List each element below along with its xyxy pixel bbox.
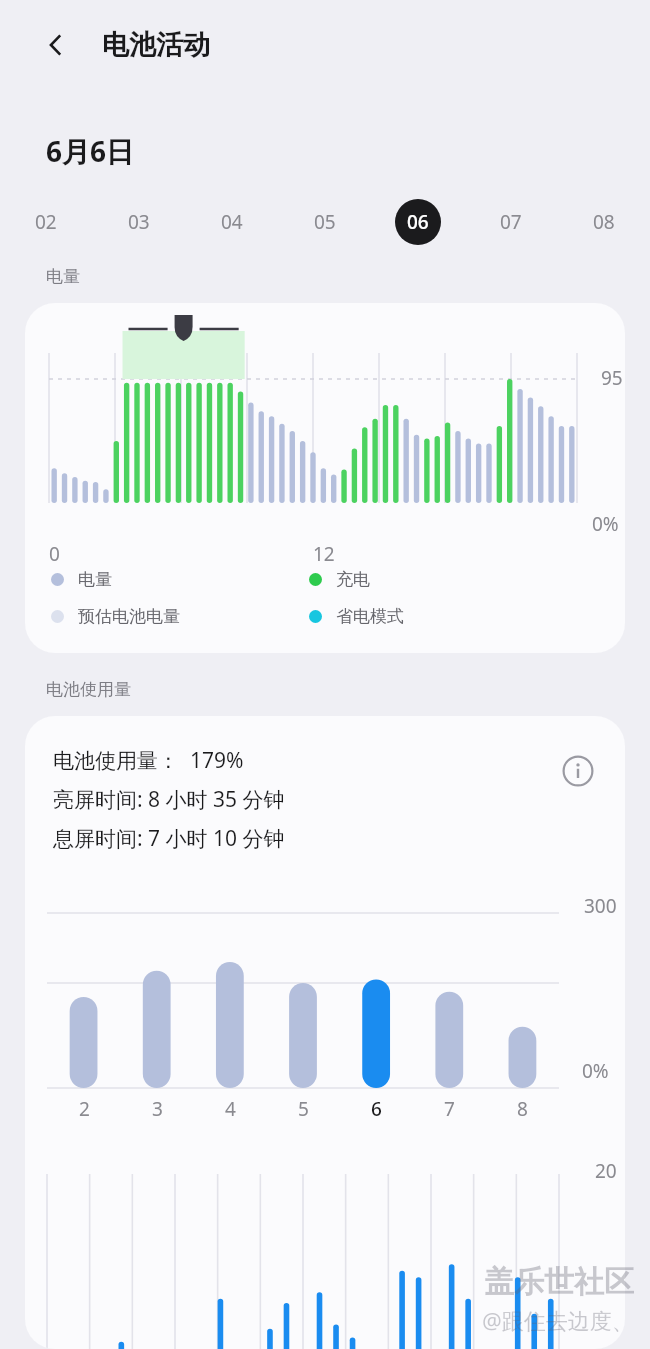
staticText: 03: [128, 209, 150, 235]
staticText: 12: [313, 541, 335, 567]
staticText: 0%: [592, 511, 619, 537]
staticText: 07: [500, 209, 522, 235]
staticText: 05: [314, 209, 336, 235]
staticText: 6月6日: [46, 132, 135, 170]
staticText: 0: [49, 541, 60, 567]
button[interactable]: 07: [464, 194, 557, 250]
staticText: 4: [225, 1096, 236, 1122]
staticText: 5: [298, 1096, 309, 1122]
button[interactable]: 08: [557, 194, 650, 250]
staticText: 6: [371, 1096, 382, 1122]
staticText: 电池使用量: [46, 679, 131, 700]
staticText: 3: [152, 1096, 163, 1122]
staticText: 02: [35, 209, 57, 235]
button[interactable]: Info: [557, 750, 599, 792]
staticText: 20: [595, 1158, 617, 1184]
staticText: 省电模式: [336, 606, 404, 627]
staticText: 充电: [336, 569, 370, 590]
button[interactable]: 05: [278, 194, 371, 250]
staticText: @跟住去边度、: [482, 1305, 634, 1335]
button[interactable]: 95: [25, 303, 625, 653]
staticText: 95: [601, 365, 623, 391]
button[interactable]: 02: [0, 194, 92, 250]
staticText: 2: [79, 1096, 90, 1122]
staticText: 08: [593, 209, 615, 235]
staticText: 电池使用量： 179%: [53, 746, 244, 775]
staticText: 7: [444, 1096, 455, 1122]
staticText: 预估电池电量: [78, 606, 180, 627]
staticText: 300: [584, 893, 617, 919]
staticText: 8: [517, 1096, 528, 1122]
staticText: 04: [221, 209, 243, 235]
staticText: 息屏时间: 7 小时 10 分钟: [53, 824, 285, 853]
staticText: 电量: [78, 569, 112, 590]
button[interactable]: 04: [185, 194, 278, 250]
staticText: 0%: [582, 1058, 609, 1084]
staticText: 盖乐世社区: [484, 1263, 634, 1301]
staticText: 电池活动: [102, 28, 210, 62]
button[interactable]: 03: [92, 194, 185, 250]
staticText: 电量: [46, 266, 80, 287]
button[interactable]: 06: [371, 194, 464, 250]
button[interactable]: Back: [32, 21, 80, 69]
staticText: 06: [407, 209, 429, 235]
staticText: 亮屏时间: 8 小时 35 分钟: [53, 785, 285, 814]
